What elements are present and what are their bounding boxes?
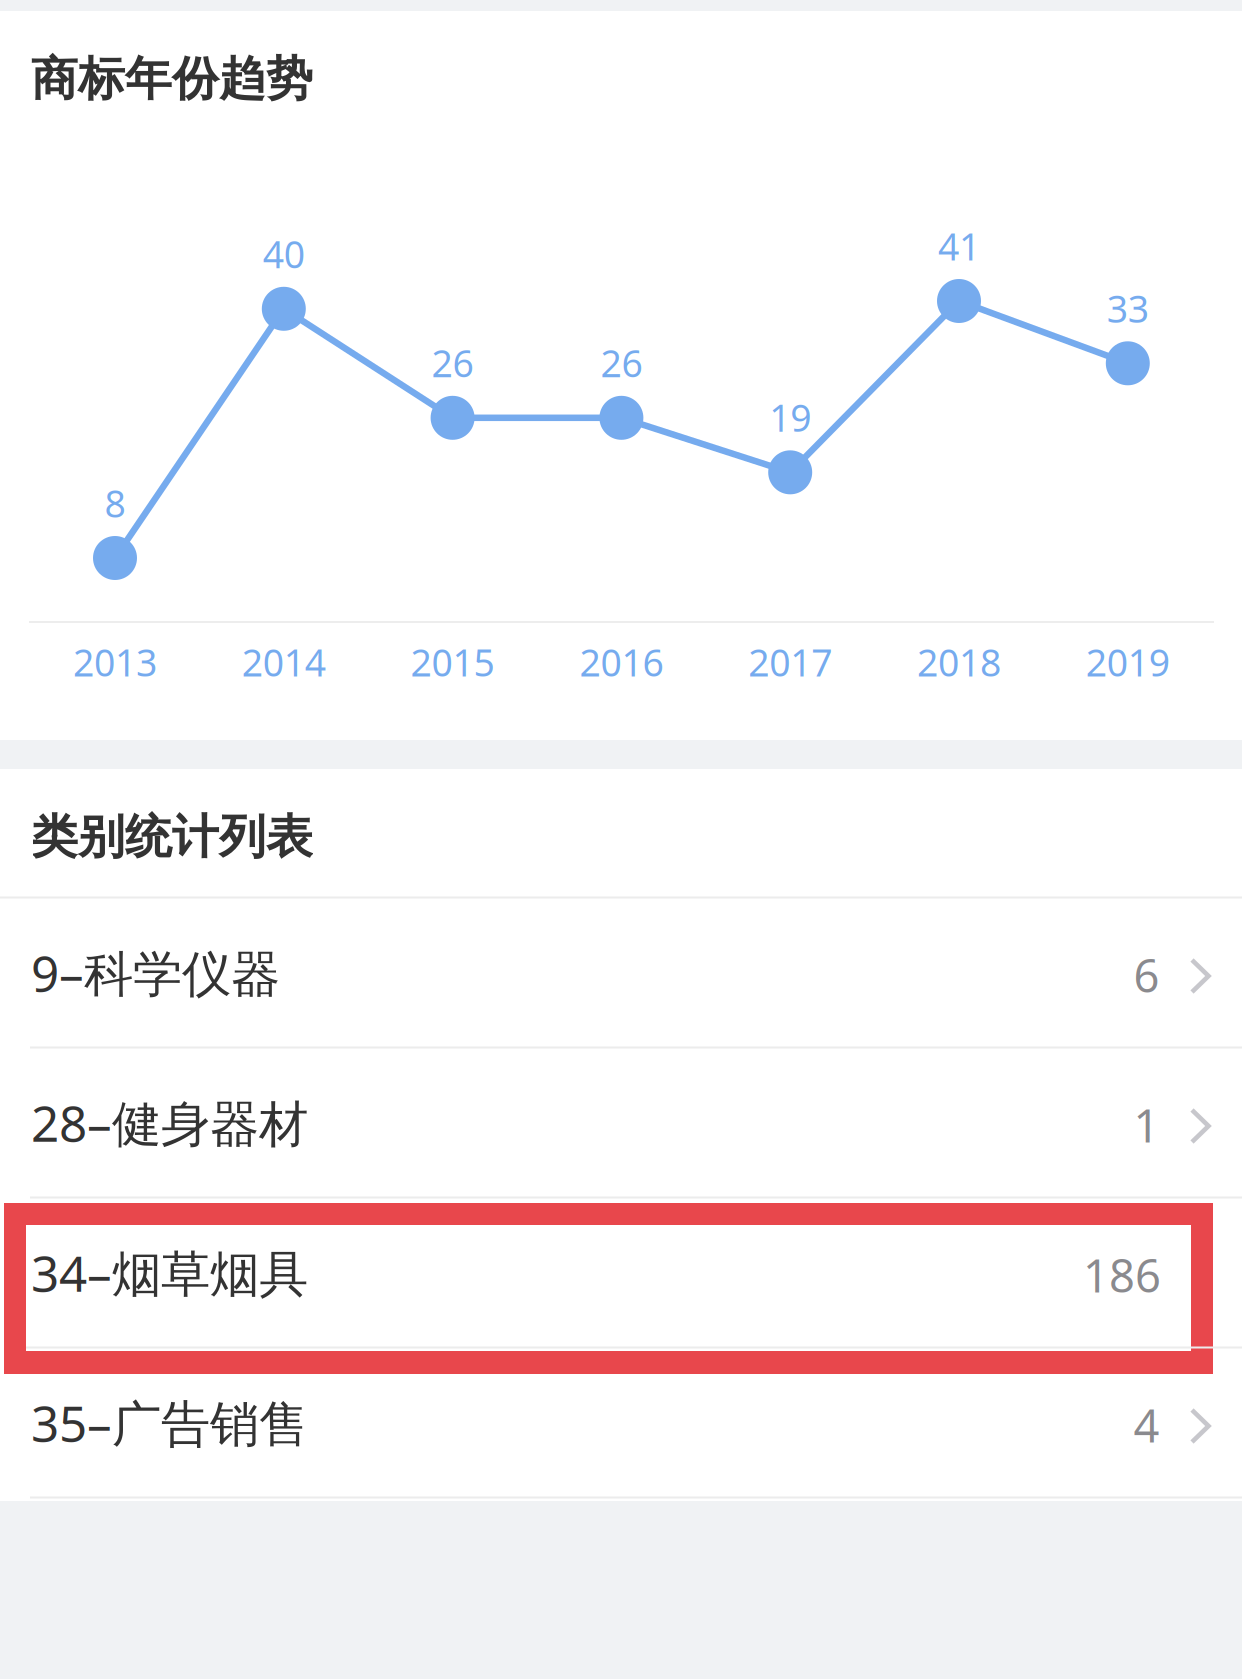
staticText: 8 — [104, 478, 125, 528]
staticText: 40 — [263, 229, 305, 279]
button[interactable]: 28–健身器材 — [0, 1047, 1242, 1197]
staticText: 35–广告销售 — [31, 1390, 308, 1455]
staticText: 4 — [1133, 1395, 1159, 1455]
button[interactable]: 9–科学仪器 — [0, 897, 1242, 1047]
button[interactable]: 34–烟草烟具 — [0, 1197, 1242, 1347]
staticText: 34–烟草烟具 — [31, 1240, 308, 1305]
staticText: 26 — [600, 338, 642, 388]
staticText: 26 — [432, 338, 474, 388]
staticText: 186 — [1083, 1245, 1161, 1305]
staticText: 2014 — [242, 637, 326, 687]
staticText: 2015 — [411, 637, 495, 687]
staticText: 9–科学仪器 — [31, 940, 280, 1005]
staticText: 2019 — [1086, 637, 1170, 687]
staticText: 28–健身器材 — [31, 1090, 308, 1155]
staticText: 41 — [938, 221, 980, 271]
staticText: 19 — [769, 392, 811, 442]
staticText: 6 — [1133, 945, 1159, 1005]
staticText: 2013 — [73, 637, 157, 687]
button[interactable]: 35–广告销售 — [0, 1347, 1242, 1497]
staticText: 2018 — [917, 637, 1001, 687]
staticText: 类别统计列表 — [31, 808, 313, 866]
staticText: 2016 — [579, 637, 663, 687]
staticText: 2017 — [748, 637, 832, 687]
staticText: 33 — [1107, 283, 1149, 333]
staticText: 商标年份趋势 — [31, 50, 313, 108]
staticText: 1 — [1133, 1095, 1159, 1155]
